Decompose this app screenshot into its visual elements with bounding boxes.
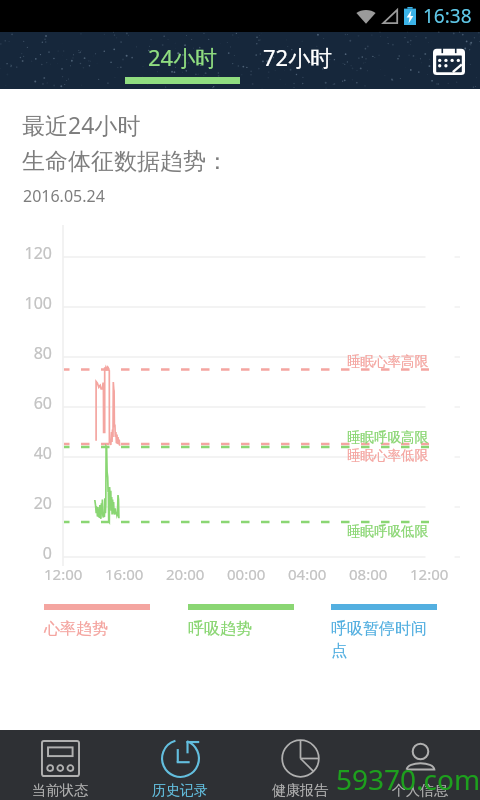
staticText: 呼吸暂停时间点	[331, 619, 437, 661]
button[interactable]: 呼吸趋势	[188, 604, 294, 639]
staticText: 12:00	[44, 564, 83, 584]
staticText: 100	[24, 292, 52, 314]
staticText: 个人信息	[392, 782, 448, 800]
staticText: 16:00	[105, 564, 144, 584]
staticText: 当前状态	[32, 782, 88, 800]
staticText: 最近24小时	[22, 109, 141, 140]
button[interactable]: 个人信息	[360, 730, 480, 800]
staticText: 心率趋势	[44, 619, 108, 639]
staticText: 12:00	[410, 564, 449, 584]
staticText: 0	[42, 542, 52, 564]
staticText: 04:00	[288, 564, 327, 584]
button[interactable]: 72小时	[240, 32, 356, 89]
staticText: 72小时	[263, 42, 333, 72]
staticText: 20	[33, 492, 52, 514]
button[interactable]: 历史记录	[120, 730, 240, 800]
staticText: 健康报告	[272, 782, 328, 800]
button[interactable]: 24小时	[125, 32, 240, 89]
staticText: 睡眠心率高限	[347, 353, 428, 370]
staticText: 59370.com	[336, 760, 480, 798]
staticText: 睡眠呼吸高限	[347, 429, 428, 446]
button[interactable]: 当前状态	[0, 730, 120, 800]
button[interactable]: Calendar	[420, 32, 477, 89]
button[interactable]: 心率趋势	[44, 604, 150, 639]
staticText: 生命体征数据趋势：	[22, 147, 229, 176]
staticText: 00:00	[227, 564, 266, 584]
staticText: 睡眠心率低限	[347, 447, 428, 464]
staticText: 20:00	[166, 564, 205, 584]
button[interactable]: 呼吸暂停时间点	[331, 604, 437, 661]
staticText: 2016.05.24	[23, 185, 105, 207]
staticText: 08:00	[349, 564, 388, 584]
staticText: 16:38	[423, 3, 472, 29]
staticText: 80	[33, 342, 52, 364]
button[interactable]: 健康报告	[240, 730, 360, 800]
staticText: 40	[33, 442, 52, 464]
staticText: 60	[33, 392, 52, 414]
staticText: 120	[24, 242, 52, 264]
staticText: 历史记录	[152, 782, 208, 800]
staticText: 呼吸趋势	[188, 619, 252, 639]
staticText: 睡眠呼吸低限	[347, 523, 428, 540]
staticText: 24小时	[148, 42, 218, 72]
